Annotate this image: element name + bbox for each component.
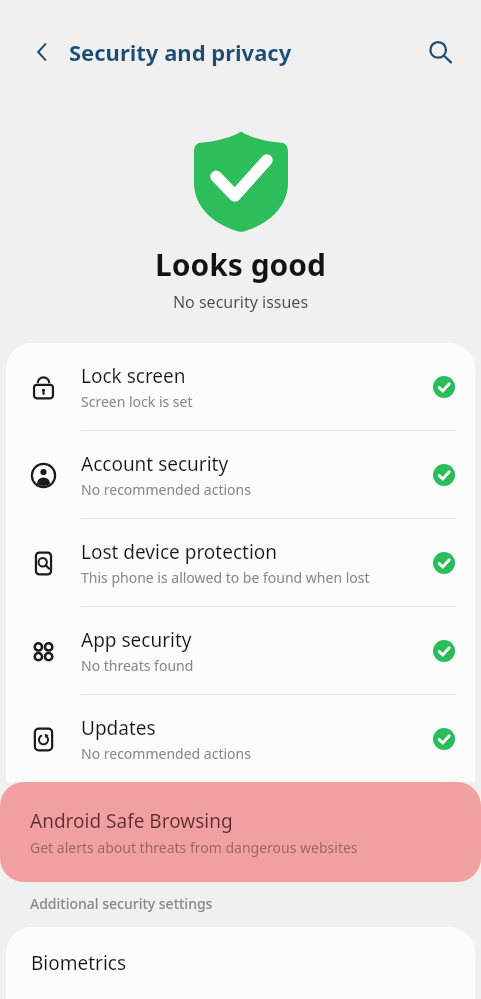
staticText: Lock screen bbox=[81, 363, 186, 389]
button[interactable]: Back bbox=[20, 30, 64, 74]
staticText: No recommended actions bbox=[81, 480, 251, 499]
staticText: Lost device protection bbox=[81, 539, 278, 565]
staticText: Account security bbox=[81, 451, 229, 477]
staticText: App security bbox=[81, 627, 192, 653]
staticText: Get alerts about threats from dangerous … bbox=[30, 838, 358, 857]
staticText: Biometrics bbox=[31, 950, 127, 976]
button[interactable]: Account security bbox=[6, 431, 475, 518]
staticText: Updates bbox=[81, 715, 156, 741]
button[interactable]: Updates bbox=[6, 695, 475, 782]
button[interactable]: Android Safe Browsing bbox=[0, 782, 481, 882]
staticText: Screen lock is set bbox=[81, 392, 193, 411]
button[interactable]: Lost device protection bbox=[6, 519, 475, 606]
button[interactable]: Search bbox=[417, 29, 463, 75]
staticText: Additional security settings bbox=[30, 894, 213, 913]
staticText: Android Safe Browsing bbox=[30, 808, 233, 834]
button[interactable]: App security bbox=[6, 607, 475, 694]
staticText: No recommended actions bbox=[81, 744, 251, 763]
staticText: Looks good bbox=[0, 244, 481, 285]
staticText: Security and privacy bbox=[69, 37, 292, 67]
staticText: No security issues bbox=[0, 291, 481, 313]
button[interactable]: Biometrics bbox=[6, 927, 475, 999]
staticText: No threats found bbox=[81, 656, 194, 675]
button[interactable]: Lock screen bbox=[6, 343, 475, 430]
staticText: This phone is allowed to be found when l… bbox=[81, 568, 370, 587]
